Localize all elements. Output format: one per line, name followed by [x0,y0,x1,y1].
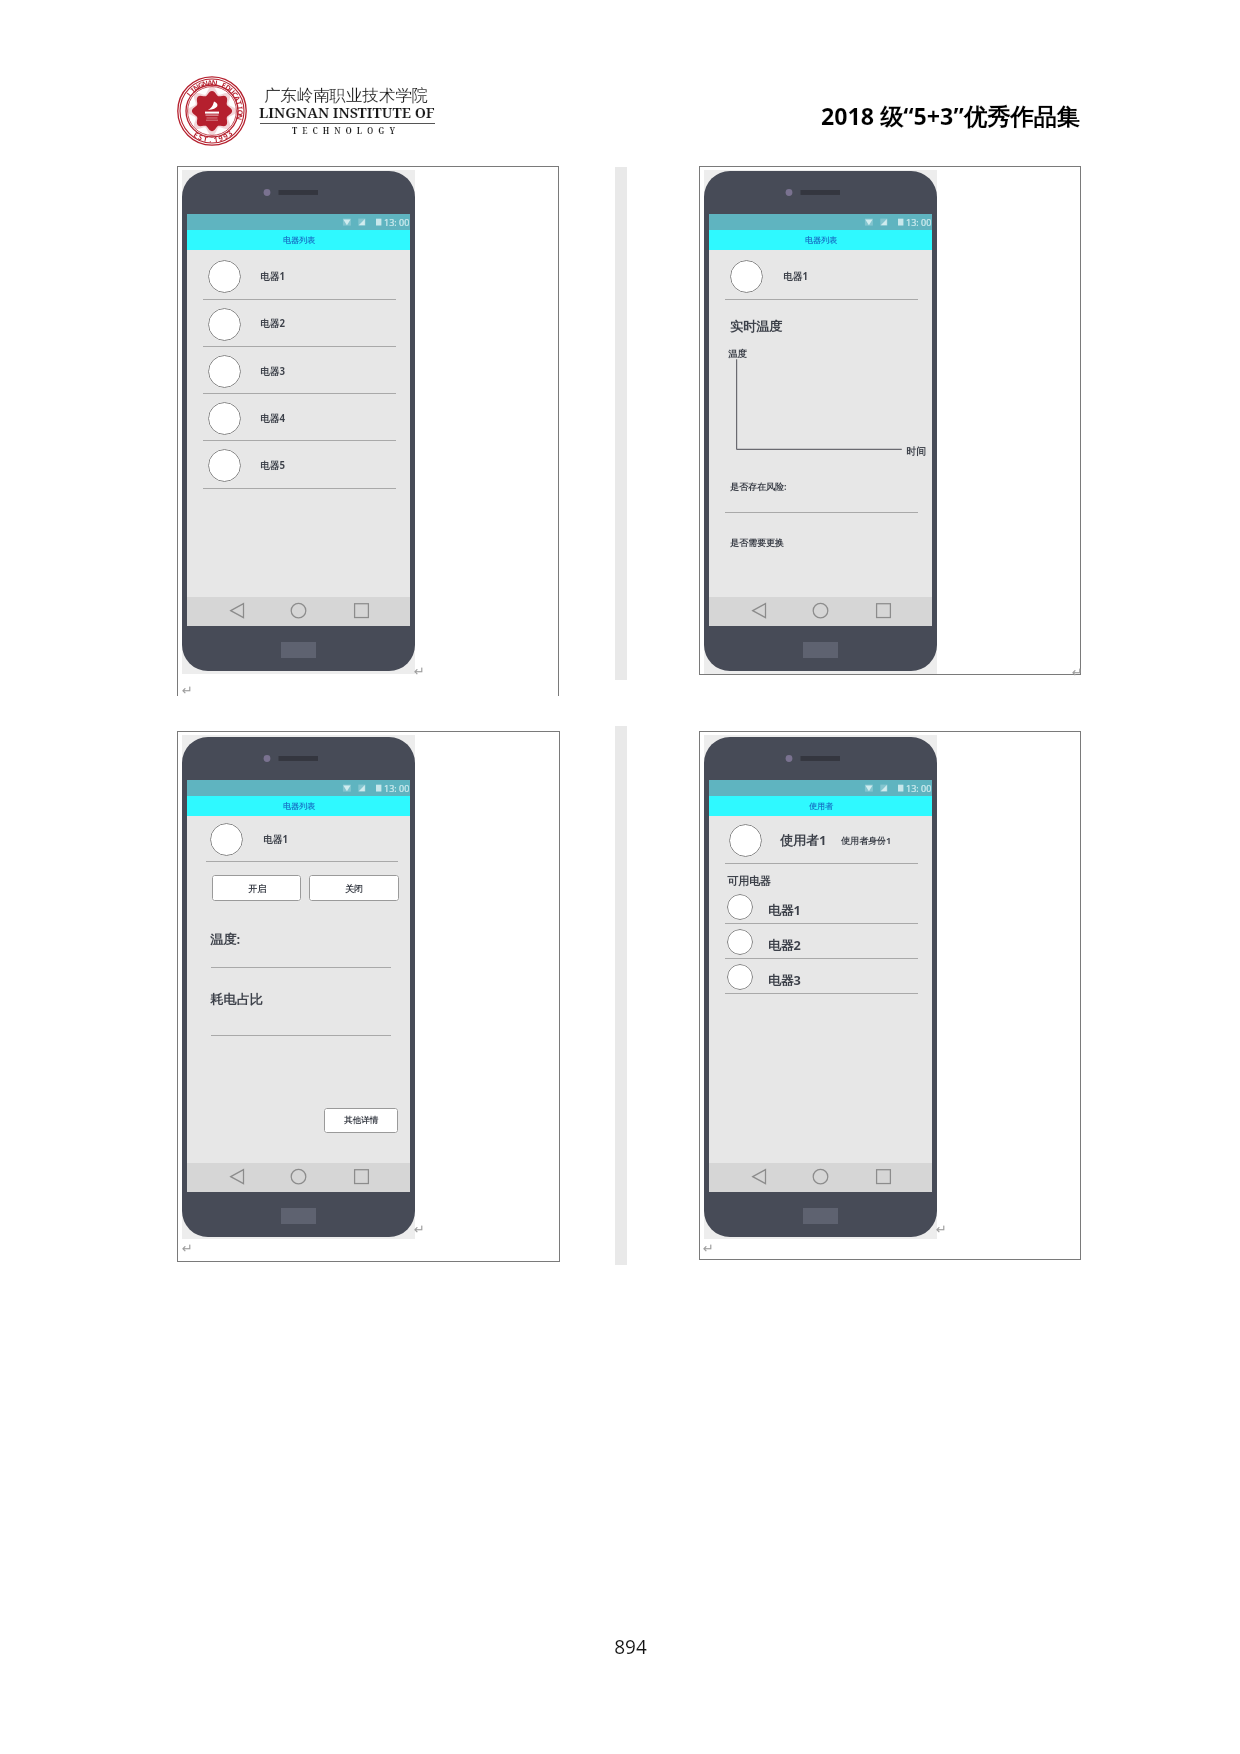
staticText: 电器1 [260,270,285,283]
button[interactable] [201,351,396,392]
button[interactable]: 开启 [212,875,301,901]
staticText: 电器2 [260,317,285,330]
staticText: 是否存在风险: [730,480,787,492]
staticText: 电器5 [260,459,285,472]
staticText: 电器2 [768,936,801,953]
staticText: 温度: [210,930,241,948]
staticText: 开启 [248,883,266,894]
button[interactable] [723,891,919,922]
other: Status indicators [187,214,410,230]
other: Status indicators [709,214,932,230]
other: Lingnan Education emblem [177,76,247,146]
staticText: 温度 [728,348,747,360]
staticText: 使用者1 [780,831,827,849]
staticText: 使用者身份1 [841,834,892,846]
button[interactable] [729,824,762,857]
other: Status indicators [709,780,932,796]
staticText: 13: 00 [384,216,410,228]
staticText: 894 [614,1634,647,1660]
other: System navigation [709,1163,932,1192]
button[interactable] [210,823,243,856]
staticText: LINGNAN INSTITUTE OF [259,103,435,122]
staticText: 广东岭南职业技术学院 [264,85,428,106]
staticText: ↵ [936,1222,947,1237]
staticText: T E C H N O L O G Y [292,125,397,136]
staticText: 电器3 [260,365,285,378]
staticText: 13: 00 [906,216,932,228]
staticText: 电器3 [768,971,801,988]
other: System navigation [709,597,932,626]
button[interactable] [201,256,396,297]
staticText: 可用电器 [727,874,771,888]
staticText: ↵ [182,1241,193,1256]
staticText: ↵ [703,1241,714,1256]
staticText: 是否需要更换 [730,537,784,548]
button[interactable] [201,398,396,439]
button[interactable] [723,926,919,957]
other: System navigation [187,1163,410,1192]
staticText: ↵ [182,683,193,698]
staticText: 耗电占比 [210,991,263,1008]
other: Status indicators [187,780,410,796]
staticText: 使用者 [809,801,833,811]
staticText: 关闭 [345,883,363,894]
button[interactable] [723,961,919,992]
staticText: 电器列表 [805,235,837,245]
button[interactable] [201,445,396,486]
staticText: ↵ [414,1222,425,1237]
staticText: 13: 00 [384,782,410,794]
button[interactable] [730,260,763,293]
staticText: 实时温度 [730,318,782,334]
other: System navigation [187,597,410,626]
button[interactable]: 关闭 [309,875,399,901]
button[interactable]: 电器列表 [709,230,932,250]
staticText: 电器1 [263,833,288,846]
staticText: ↵ [1072,665,1083,680]
staticText: 电器1 [783,270,808,283]
button[interactable]: 使用者 [709,796,932,816]
staticText: 电器4 [260,412,285,425]
button[interactable] [201,303,396,344]
button[interactable]: 电器列表 [187,230,410,250]
staticText: 电器列表 [283,801,315,811]
staticText: 13: 00 [906,782,932,794]
staticText: ↵ [414,664,425,679]
button[interactable]: 电器列表 [187,796,410,816]
staticText: 电器1 [768,901,801,918]
staticText: 时间 [906,445,926,458]
staticText: 其他详情 [344,1115,378,1126]
button[interactable]: 其他详情 [324,1108,398,1133]
staticText: 2018 级“5+3”优秀作品集 [821,100,1080,132]
staticText: 电器列表 [283,235,315,245]
